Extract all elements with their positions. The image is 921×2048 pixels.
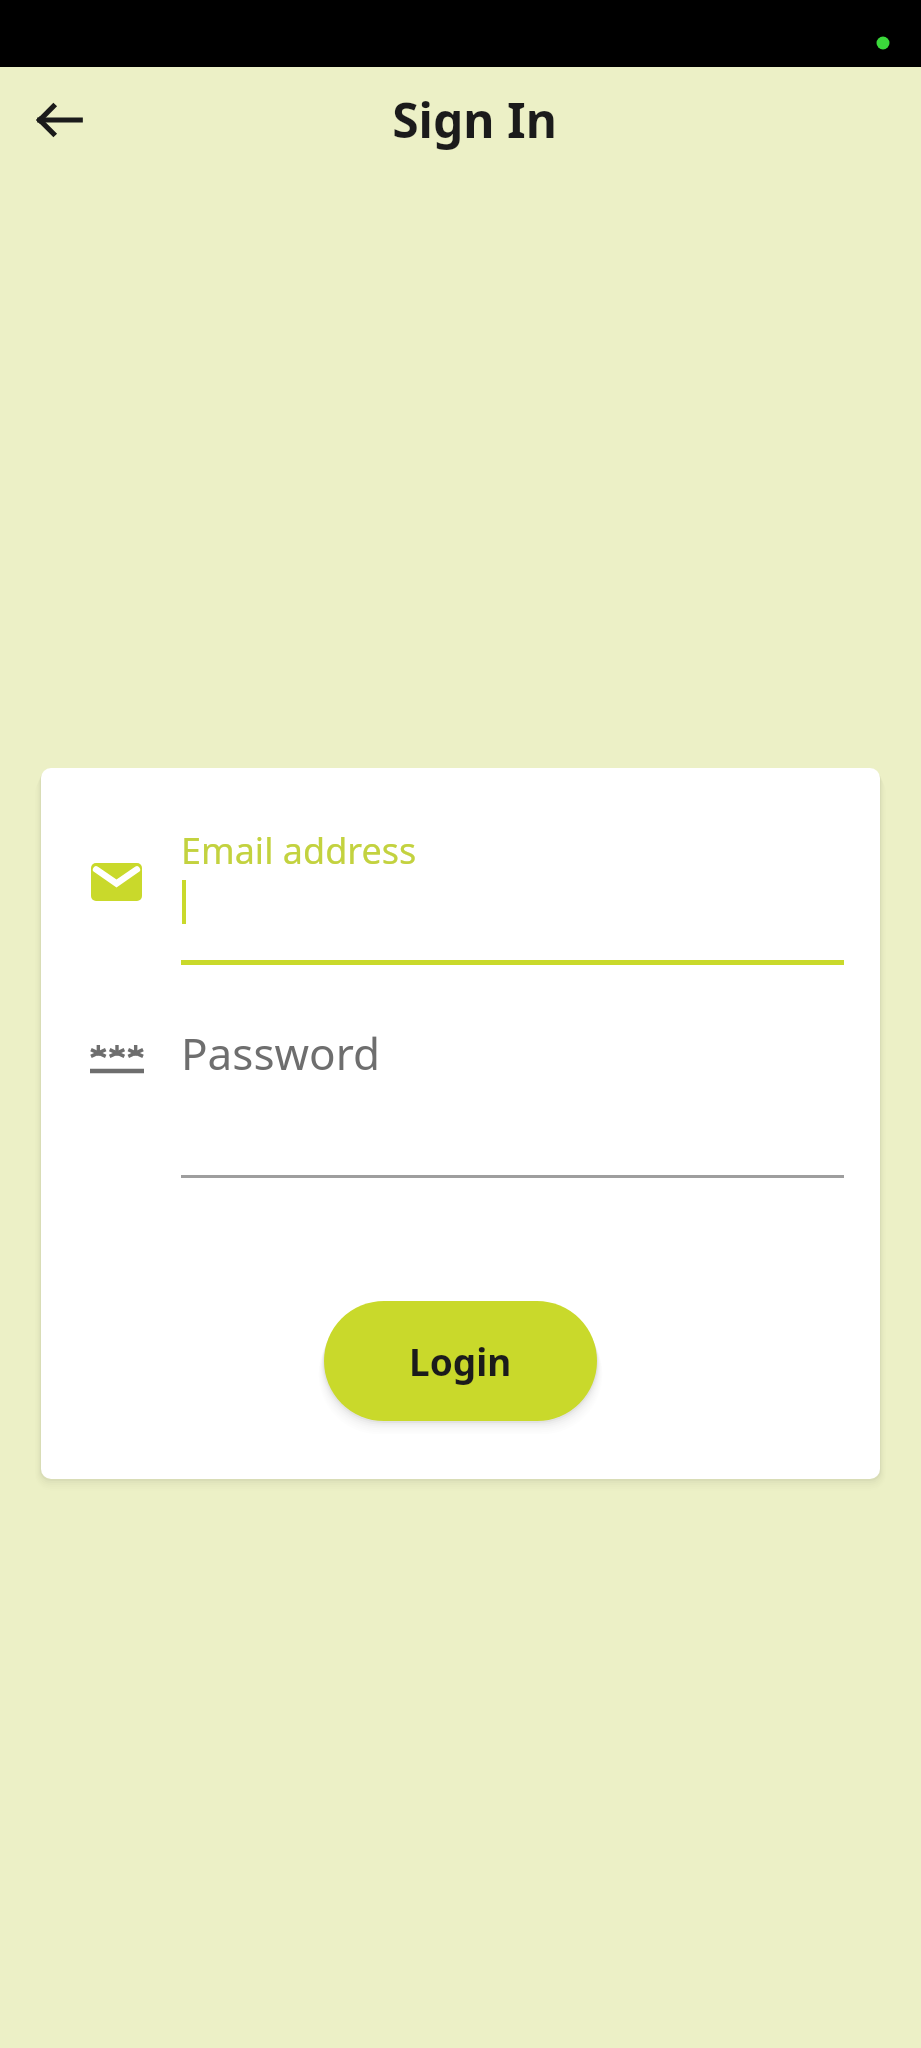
staticText: Sign In [392,87,557,152]
button[interactable]: Password [41,995,880,1210]
button[interactable]: Email address [41,768,880,995]
button[interactable]: Back [18,78,102,162]
button[interactable]: Login [324,1301,597,1421]
staticText: Login [409,1336,512,1386]
staticText: Password [181,1023,381,1083]
staticText: Email address [181,826,417,875]
